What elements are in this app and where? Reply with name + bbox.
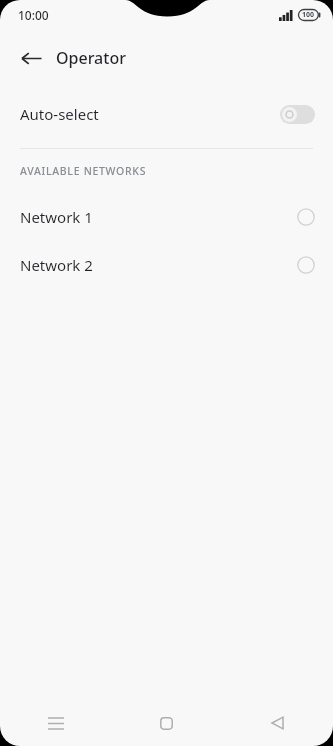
button[interactable]: Network 2 [0,241,333,289]
staticText: Auto-select [20,104,280,124]
button[interactable]: Recent apps [0,700,111,746]
staticText: AVAILABLE NETWORKS [20,164,147,178]
button[interactable]: Auto-select [0,86,333,142]
staticText: 10:00 [18,7,49,23]
button[interactable]: Home [111,700,222,746]
staticText: Operator [56,47,126,69]
button[interactable]: Network 1 [0,193,333,241]
staticText: 100 [302,10,315,20]
button[interactable]: Back [222,700,333,746]
button[interactable]: Back [10,37,52,79]
staticText: Network 2 [20,255,297,275]
staticText: Network 1 [20,207,297,227]
